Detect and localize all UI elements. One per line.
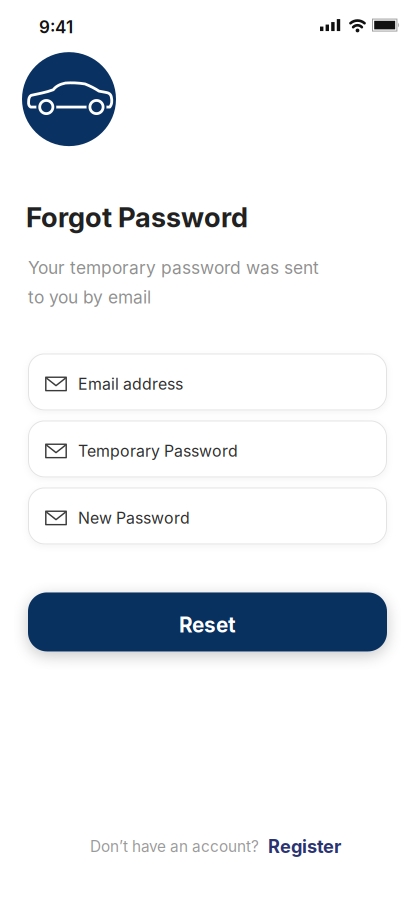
staticText: Temporary Password [78,442,238,460]
staticText: Forgot Password [26,201,248,233]
staticText: Register [268,836,341,857]
button[interactable]: Reset [28,592,387,651]
button[interactable]: Temporary Password [28,420,387,477]
button[interactable]: Register [268,836,341,857]
staticText: New Password [78,509,190,527]
staticText: Your temporary password was sent [28,257,319,278]
staticText: Reset [179,613,236,637]
staticText: Email address [78,375,183,393]
staticText: 9:41 [39,17,73,37]
button[interactable]: New Password [28,487,387,544]
staticText: Don’t have an account? [90,837,259,855]
staticText: to you by email [28,287,151,307]
button[interactable]: Email address [28,353,387,410]
